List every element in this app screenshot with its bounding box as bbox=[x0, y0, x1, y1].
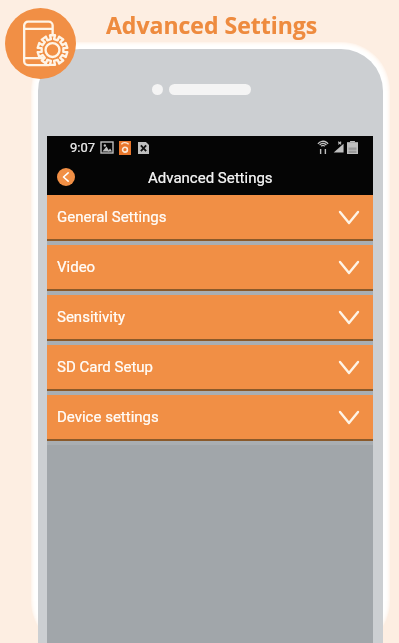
staticText: Sensitivity bbox=[57, 308, 126, 326]
staticText: General Settings bbox=[57, 208, 167, 226]
button[interactable]: Video bbox=[47, 245, 373, 289]
button[interactable]: Sensitivity bbox=[47, 295, 373, 339]
button[interactable]: Back bbox=[57, 168, 75, 186]
staticText: Advanced Settings bbox=[106, 9, 318, 40]
staticText: 9:07 bbox=[70, 140, 96, 155]
other: Advanced Settings bbox=[5, 8, 76, 79]
staticText: Device settings bbox=[57, 408, 159, 426]
button[interactable]: General Settings bbox=[47, 195, 373, 239]
staticText: SD Card Setup bbox=[57, 358, 153, 376]
button[interactable]: Device settings bbox=[47, 395, 373, 439]
staticText: Advanced Settings bbox=[148, 169, 273, 187]
staticText: Video bbox=[57, 258, 96, 276]
button[interactable]: SD Card Setup bbox=[47, 345, 373, 389]
